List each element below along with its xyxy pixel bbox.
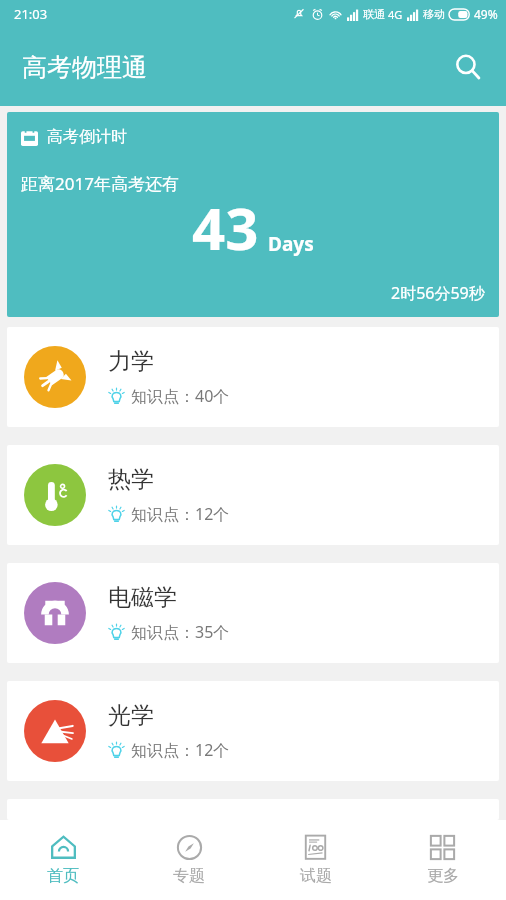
staticText: 联通 bbox=[363, 7, 385, 21]
staticText: 21:03 bbox=[14, 5, 48, 23]
button[interactable]: 试题 bbox=[252, 820, 379, 900]
staticText: 知识点：35个 bbox=[131, 621, 230, 643]
staticText: 知识点：12个 bbox=[131, 739, 230, 761]
button[interactable]: 电磁学 bbox=[7, 563, 499, 663]
staticText: 知识点：12个 bbox=[131, 503, 230, 525]
button[interactable]: 首页 bbox=[0, 820, 126, 900]
staticText: 试题 bbox=[300, 866, 332, 886]
staticText: 距离2017年高考还有 bbox=[21, 172, 179, 195]
staticText: 光学 bbox=[108, 701, 154, 730]
staticText: 知识点：40个 bbox=[131, 385, 230, 407]
button[interactable]: 高考倒计时 bbox=[7, 112, 499, 317]
staticText: 首页 bbox=[47, 866, 79, 886]
staticText: Days bbox=[268, 231, 314, 257]
staticText: 力学 bbox=[108, 347, 154, 376]
staticText: 电磁学 bbox=[108, 583, 177, 612]
staticText: 高考倒计时 bbox=[47, 127, 127, 147]
staticText: 更多 bbox=[427, 866, 459, 886]
staticText: 移动 bbox=[423, 7, 445, 21]
button[interactable]: 力学 bbox=[7, 327, 499, 427]
staticText: 43 bbox=[192, 188, 259, 267]
button[interactable]: 光学 bbox=[7, 681, 499, 781]
button[interactable]: 更多 bbox=[379, 820, 506, 900]
staticText: 高考物理通 bbox=[22, 52, 147, 83]
button[interactable]: 热学 bbox=[7, 445, 499, 545]
button[interactable]: 专题 bbox=[126, 820, 252, 900]
staticText: 2时56分59秒 bbox=[391, 282, 485, 304]
staticText: 热学 bbox=[108, 465, 154, 494]
button[interactable]: Search bbox=[444, 43, 492, 91]
staticText: 专题 bbox=[173, 866, 205, 886]
staticText: 4G bbox=[388, 7, 403, 22]
staticText: 49% bbox=[474, 6, 498, 22]
